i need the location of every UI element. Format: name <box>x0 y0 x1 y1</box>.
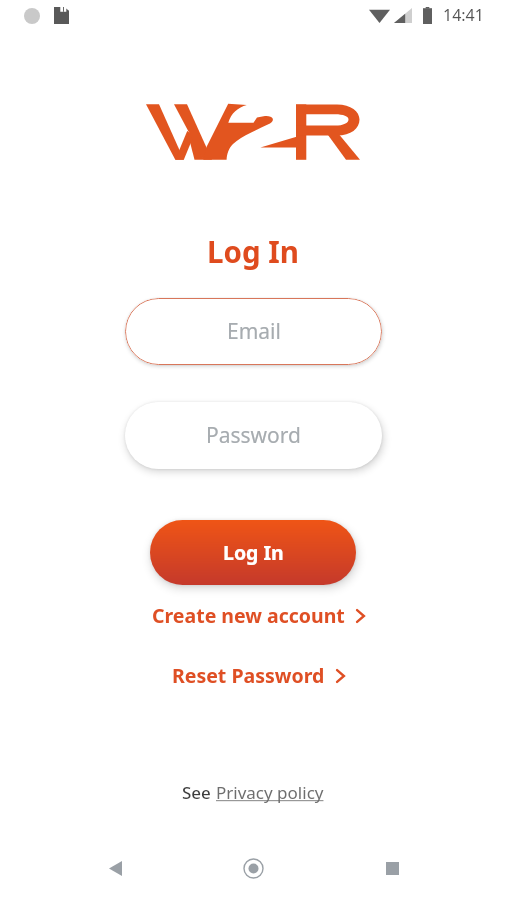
button[interactable]: Privacy policy <box>216 781 324 804</box>
button[interactable]: Password <box>125 402 382 469</box>
staticText: Create new account <box>152 602 345 629</box>
button[interactable]: Back <box>91 844 139 892</box>
button[interactable]: Create new account <box>146 597 371 634</box>
button[interactable]: Email <box>125 298 382 365</box>
staticText: Password <box>206 421 301 450</box>
button[interactable]: Recents <box>368 844 416 892</box>
staticText: Email <box>227 317 281 346</box>
staticText: Log In <box>207 231 299 271</box>
button[interactable]: Home <box>229 844 277 892</box>
button[interactable]: Reset Password <box>166 657 351 694</box>
staticText: Log In <box>223 539 284 566</box>
button[interactable]: Log In <box>150 520 356 585</box>
staticText: See <box>182 781 216 804</box>
staticText: Reset Password <box>172 662 325 689</box>
staticText: 14:41 <box>443 4 484 26</box>
